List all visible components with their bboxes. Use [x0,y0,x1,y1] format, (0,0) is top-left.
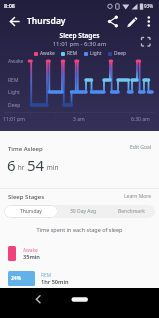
staticText: 6:30 am [131,116,150,123]
button[interactable] [28,290,48,308]
staticText: Deep [8,102,21,109]
staticText: Awake [8,58,24,65]
staticText: 30 Day Avg [70,208,97,215]
staticText: Edit Goal [130,144,152,151]
staticText: 54 [27,155,45,175]
staticText: 3 am [73,116,85,123]
staticText: Sleep Stages [8,193,45,201]
staticText: 11:01 pm - 6:30 am [0,40,159,48]
staticText: Thursday [20,208,42,215]
staticText: REM [41,272,52,279]
button[interactable]: Learn More [118,190,155,202]
staticText: Deep [114,50,126,57]
button[interactable]: Benchmark [108,205,155,218]
button[interactable]: 30 Day Avg [58,205,108,218]
staticText: Sleep Stages [0,31,159,40]
button[interactable] [137,33,155,50]
button[interactable] [4,13,28,30]
staticText: REM [8,77,19,84]
staticText: REM [67,50,78,57]
staticText: hr [16,163,27,172]
button[interactable]: Edit Goal [120,141,155,153]
staticText: 24% [11,275,22,282]
button[interactable] [122,13,142,30]
staticText: Awake [23,247,38,254]
staticText: Light [90,50,102,57]
button[interactable] [102,13,122,30]
staticText: 11:01 pm [3,116,25,123]
staticText: Time spent in each stage of sleep [0,226,159,233]
staticText: 93% [144,3,154,9]
staticText: Light [8,89,20,96]
staticText: Time Asleep [8,145,43,153]
staticText: 1hr 50min [41,278,69,286]
staticText: 35min [23,253,40,261]
staticText: min [45,163,59,172]
staticText: Awake [40,50,55,57]
button[interactable] [142,13,158,30]
staticText: Benchmark [118,208,145,215]
staticText: 6 [7,155,16,175]
staticText: Learn More [124,193,152,200]
staticText: 8:08 [4,2,15,9]
button[interactable]: Thursday [4,205,58,218]
button[interactable] [68,290,92,308]
staticText: Thursday [27,15,66,27]
